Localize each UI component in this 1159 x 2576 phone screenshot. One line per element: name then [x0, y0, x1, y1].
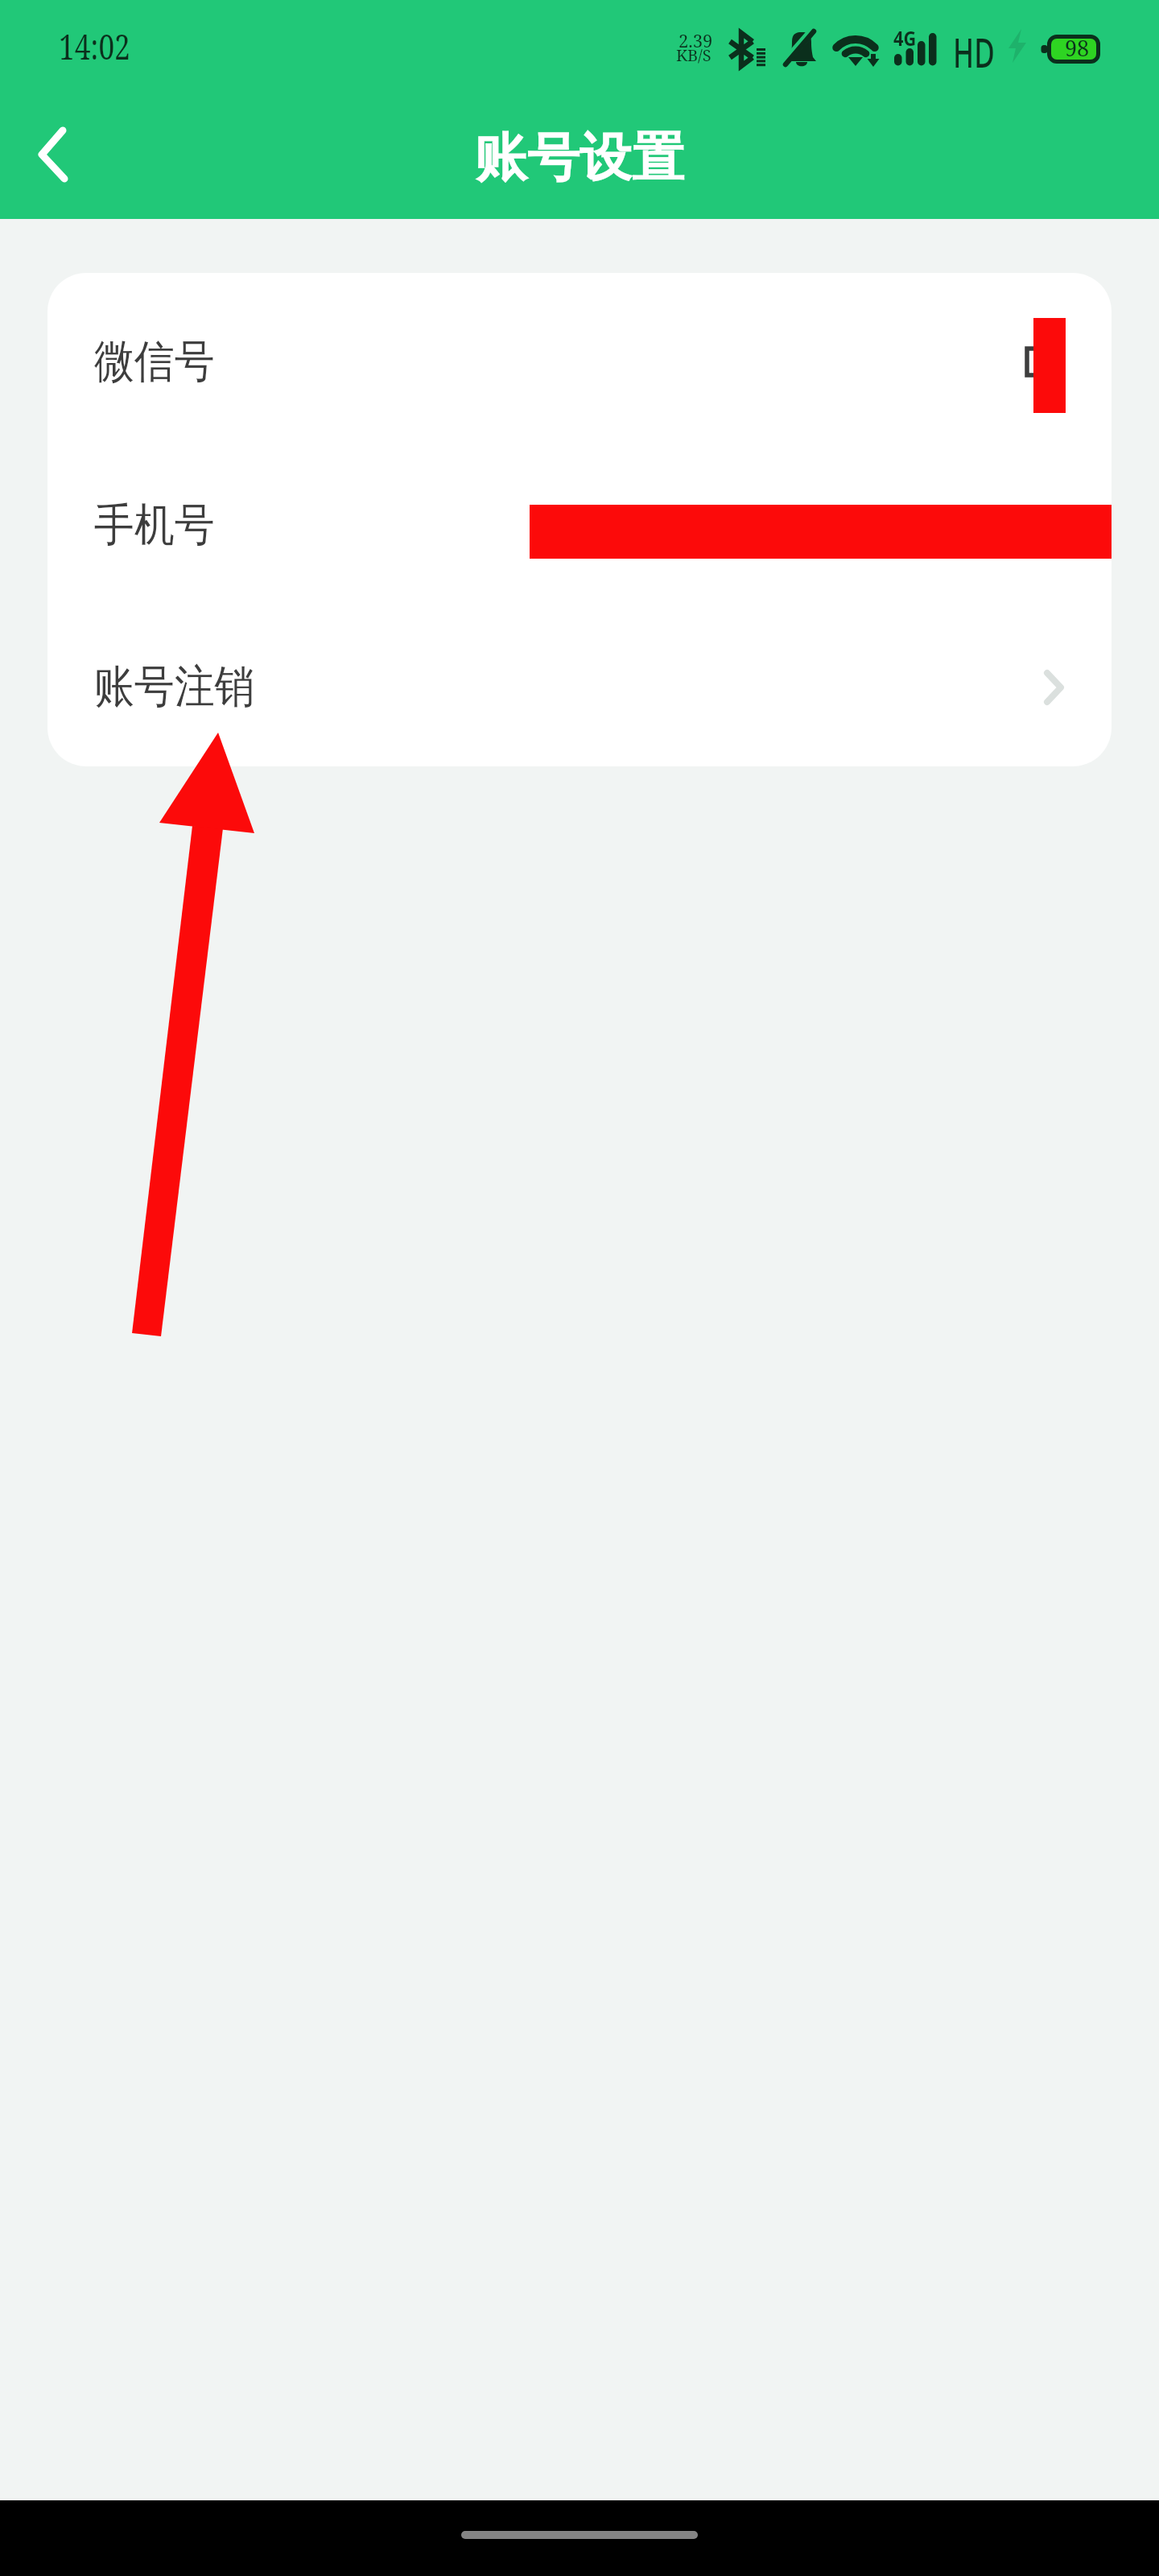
staticText: 2.39: [678, 28, 713, 52]
staticText: 98: [1065, 33, 1090, 63]
staticText: 4G: [893, 25, 916, 52]
button[interactable]: Back: [4, 110, 101, 207]
staticText: HD: [953, 25, 995, 80]
staticText: 微信号: [94, 333, 214, 390]
staticText: 账号注销: [94, 658, 255, 716]
button[interactable]: 手机号: [47, 444, 1112, 607]
staticText: 账号设置: [475, 125, 684, 191]
staticText: 手机号: [94, 497, 214, 554]
button[interactable]: 微信号: [47, 280, 1112, 444]
button[interactable]: 账号注销: [47, 607, 1112, 766]
staticText: KB/S: [676, 44, 711, 66]
staticText: 14:02: [59, 22, 130, 70]
